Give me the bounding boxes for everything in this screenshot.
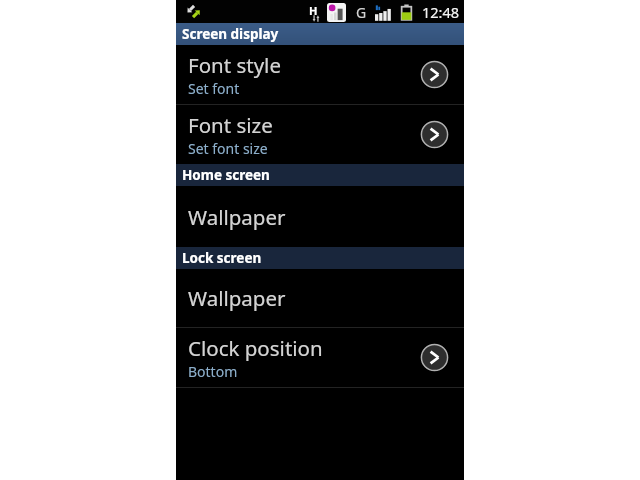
staticText: 12:48 xyxy=(422,2,460,22)
staticText: Screen display xyxy=(182,25,279,43)
button[interactable]: Configure Font style xyxy=(420,60,449,89)
staticText: H xyxy=(309,3,318,18)
button[interactable]: Wallpaper xyxy=(176,186,464,247)
staticText: Home screen xyxy=(182,166,270,184)
button[interactable]: Font style xyxy=(176,45,464,104)
staticText: Wallpaper xyxy=(188,203,286,231)
staticText: Set font size xyxy=(188,139,268,158)
button[interactable]: Configure Font size xyxy=(420,120,449,149)
other: USB connected xyxy=(186,4,201,19)
button[interactable]: Wallpaper xyxy=(176,269,464,327)
staticText: Font size xyxy=(188,111,273,139)
staticText: Wallpaper xyxy=(188,284,286,312)
button[interactable]: Font size xyxy=(176,105,464,164)
button[interactable]: Configure Clock position xyxy=(420,343,449,372)
button[interactable]: Clock position xyxy=(176,328,464,387)
staticText: Set font xyxy=(188,79,240,98)
staticText: Clock position xyxy=(188,334,323,362)
staticText: Font style xyxy=(188,51,281,79)
staticText: Bottom xyxy=(188,362,238,381)
staticText: Lock screen xyxy=(182,249,262,267)
staticText: G xyxy=(356,3,367,22)
